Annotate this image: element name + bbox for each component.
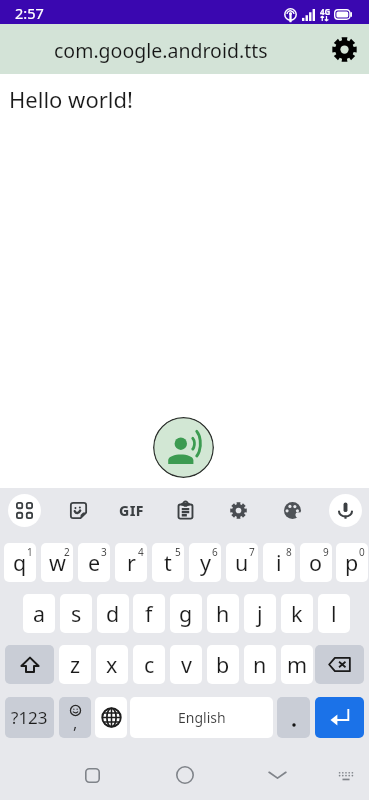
button[interactable] (277, 697, 310, 738)
staticText: 2:57 (15, 3, 44, 23)
staticText: u (235, 548, 249, 577)
button[interactable]: l (318, 594, 350, 633)
staticText: 8 (286, 545, 292, 559)
button[interactable]: Home (165, 750, 205, 800)
button[interactable]: English (130, 697, 273, 738)
staticText: x (106, 650, 118, 679)
button[interactable]: v (170, 645, 202, 684)
staticText: 1 (27, 545, 33, 559)
button[interactable]: Apps (5, 491, 43, 529)
button[interactable]: Settings (219, 491, 257, 529)
staticText: 4G (320, 6, 331, 17)
staticText: , (73, 712, 78, 734)
button[interactable]: Themes (273, 491, 311, 529)
button[interactable]: Speak (153, 417, 214, 478)
staticText: m (287, 650, 308, 679)
button[interactable]: p (336, 543, 368, 582)
button[interactable]: t (152, 543, 184, 582)
button[interactable]: Enter (315, 697, 364, 738)
button[interactable]: Back (257, 750, 297, 800)
button[interactable]: Clipboard (166, 491, 204, 529)
staticText: n (253, 650, 267, 679)
button[interactable]: m (281, 645, 313, 684)
staticText: r (127, 548, 136, 577)
staticText: d (106, 599, 120, 628)
staticText: f (145, 599, 153, 628)
staticText: e (88, 548, 101, 577)
staticText: y (200, 548, 211, 577)
button[interactable]: s (60, 594, 92, 633)
button[interactable]: Change language (95, 697, 127, 738)
button[interactable]: u (226, 543, 258, 582)
staticText: j (257, 599, 263, 628)
staticText: g (179, 599, 193, 628)
button[interactable]: g (170, 594, 202, 633)
staticText: o (309, 548, 323, 577)
staticText: p (345, 548, 359, 577)
staticText: s (71, 599, 82, 628)
button[interactable]: Emoji (59, 697, 91, 738)
staticText: 5 (175, 545, 181, 559)
button[interactable]: Settings (326, 31, 362, 67)
button[interactable]: Voice input (326, 491, 364, 529)
staticText: a (33, 599, 46, 628)
staticText: 7 (249, 545, 255, 559)
staticText: b (216, 650, 230, 679)
staticText: i (276, 548, 282, 577)
button[interactable]: d (97, 594, 129, 633)
staticText: h (216, 599, 230, 628)
staticText: Hello world! (9, 84, 133, 114)
staticText: k (291, 599, 303, 628)
button[interactable]: GIF (112, 491, 150, 529)
button[interactable]: j (244, 594, 276, 633)
button[interactable]: w (41, 543, 73, 582)
staticText: 2 (64, 545, 70, 559)
staticText: com.google.android.tts (54, 37, 268, 64)
button[interactable]: ?123 (5, 697, 54, 738)
staticText: 9 (323, 545, 329, 559)
staticText: v (181, 650, 192, 679)
staticText: GIF (119, 501, 144, 520)
staticText: q (13, 548, 27, 577)
button[interactable]: r (115, 543, 147, 582)
button[interactable]: a (23, 594, 55, 633)
button[interactable]: z (59, 645, 91, 684)
button[interactable]: Shift (5, 645, 54, 684)
button[interactable]: Switch keyboard (326, 750, 366, 800)
button[interactable]: i (263, 543, 295, 582)
button[interactable]: h (207, 594, 239, 633)
button[interactable]: Stickers (59, 491, 97, 529)
staticText: 3 (101, 545, 107, 559)
button[interactable]: q (4, 543, 36, 582)
staticText: l (331, 599, 337, 628)
button[interactable]: n (244, 645, 276, 684)
staticText: 4 (138, 545, 144, 559)
staticText: ?123 (11, 706, 48, 729)
button[interactable]: y (189, 543, 221, 582)
staticText: z (70, 650, 81, 679)
staticText: w (49, 548, 66, 577)
staticText: English (178, 708, 226, 727)
button[interactable]: e (78, 543, 110, 582)
button[interactable]: c (133, 645, 165, 684)
button[interactable]: k (281, 594, 313, 633)
button[interactable]: x (96, 645, 128, 684)
button[interactable]: b (207, 645, 239, 684)
button[interactable]: Recent apps (72, 750, 112, 800)
staticText: c (144, 650, 155, 679)
button[interactable]: Backspace (315, 645, 364, 684)
staticText: 6 (212, 545, 218, 559)
staticText: 0 (359, 545, 365, 559)
button[interactable]: f (133, 594, 165, 633)
staticText: t (164, 548, 172, 577)
button[interactable]: o (300, 543, 332, 582)
